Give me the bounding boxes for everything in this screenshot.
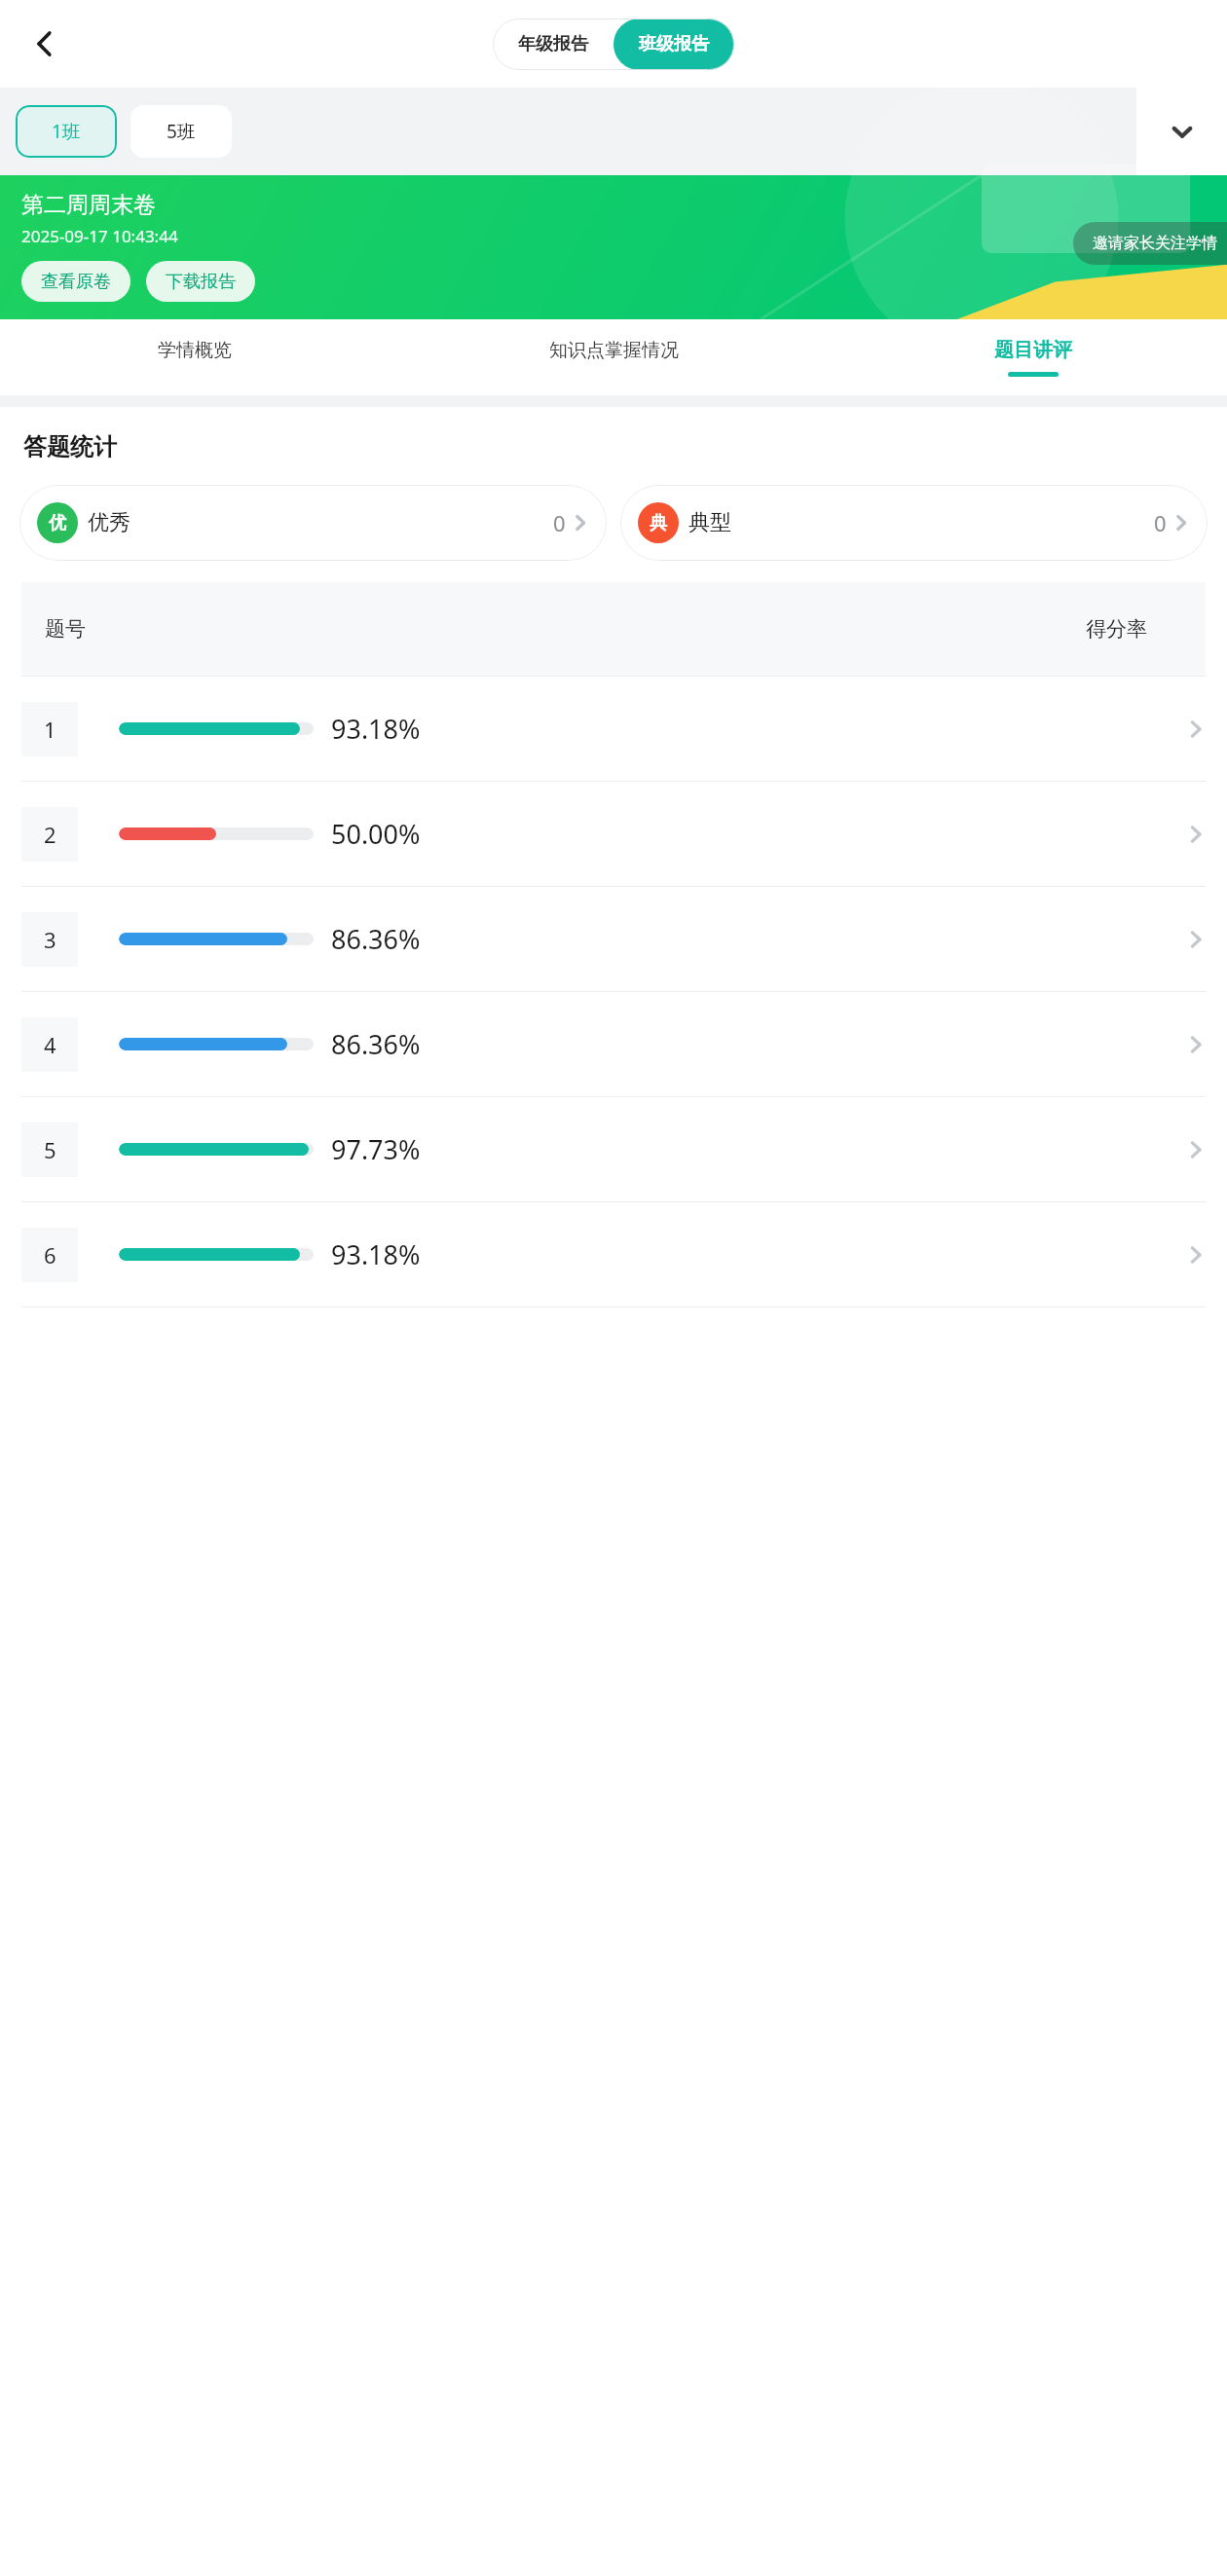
button[interactable]: 5班 xyxy=(130,105,232,158)
staticText: 1 xyxy=(44,715,56,744)
button[interactable]: 查看原卷 xyxy=(21,261,130,302)
button[interactable]: 1班 xyxy=(16,105,117,158)
staticText: 年级报告 xyxy=(518,33,588,55)
staticText: 学情概览 xyxy=(158,339,232,362)
button[interactable]: 3 xyxy=(21,887,1206,991)
button[interactable]: 年级报告 xyxy=(493,18,613,70)
staticText: 班级报告 xyxy=(639,33,709,55)
staticText: 邀请家长关注学情 xyxy=(1093,234,1217,253)
button[interactable]: 邀请家长关注学情 xyxy=(1073,222,1227,265)
staticText: 6 xyxy=(44,1240,56,1270)
button[interactable]: 班级报告 xyxy=(613,18,734,70)
button[interactable]: 5 xyxy=(21,1097,1206,1201)
staticText: 典型 xyxy=(688,509,731,536)
button[interactable]: 学情概览 xyxy=(8,319,381,395)
staticText: 知识点掌握情况 xyxy=(549,339,679,362)
staticText: 50.00% xyxy=(331,816,421,852)
button[interactable]: 2 xyxy=(21,782,1206,886)
button[interactable]: 下载报告 xyxy=(146,261,255,302)
staticText: 题号 xyxy=(45,616,86,642)
staticText: 5 xyxy=(44,1135,56,1164)
staticText: 下载报告 xyxy=(166,271,236,293)
staticText: 优 xyxy=(49,512,66,534)
button[interactable]: 4 xyxy=(21,992,1206,1096)
staticText: 典 xyxy=(650,512,667,534)
staticText: 1班 xyxy=(52,119,81,144)
button[interactable]: Back xyxy=(18,17,72,71)
staticText: 5班 xyxy=(167,119,196,144)
staticText: 97.73% xyxy=(331,1131,421,1167)
staticText: 2025-09-17 10:43:44 xyxy=(21,225,178,247)
staticText: 0 xyxy=(1154,508,1167,537)
staticText: 第二周周末卷 xyxy=(21,191,156,219)
staticText: 2 xyxy=(44,820,56,849)
staticText: 93.18% xyxy=(331,1236,421,1272)
button[interactable]: 优 xyxy=(19,485,607,561)
button[interactable]: 6 xyxy=(21,1202,1206,1306)
staticText: 3 xyxy=(44,925,56,954)
staticText: 优秀 xyxy=(88,509,130,536)
staticText: 得分率 xyxy=(1086,616,1147,642)
staticText: 0 xyxy=(553,508,566,537)
button[interactable]: Expand classes xyxy=(1136,88,1227,175)
staticText: 93.18% xyxy=(331,711,421,747)
staticText: 86.36% xyxy=(331,921,421,957)
button[interactable]: 知识点掌握情况 xyxy=(381,319,846,395)
staticText: 题目讲评 xyxy=(994,338,1072,362)
staticText: 答题统计 xyxy=(23,432,117,461)
staticText: 86.36% xyxy=(331,1026,421,1062)
button[interactable]: 典 xyxy=(620,485,1208,561)
staticText: 4 xyxy=(44,1030,56,1059)
button[interactable]: 题目讲评 xyxy=(846,319,1219,395)
staticText: 查看原卷 xyxy=(41,271,111,293)
button[interactable]: 1 xyxy=(21,677,1206,781)
